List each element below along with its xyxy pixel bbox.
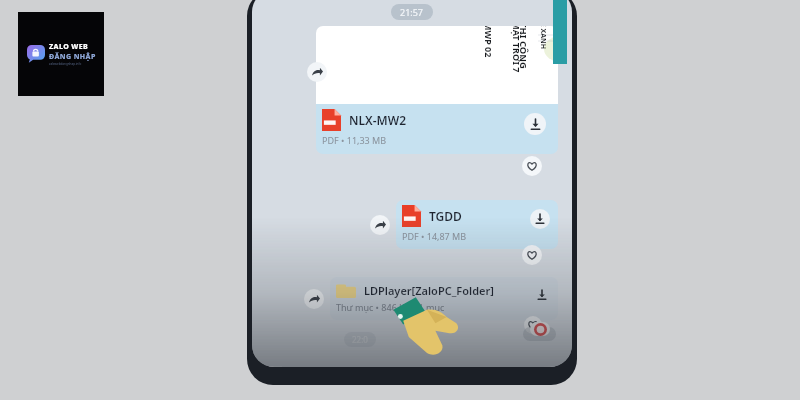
staticText: LDPlayer[ZaloPC_Folder] [364, 283, 494, 298]
button[interactable]: Zalo Web logo [18, 12, 104, 96]
button[interactable]: Like [522, 156, 542, 176]
staticText: ZALO WEB [49, 42, 89, 52]
staticText: IỀN MẶT TRỜI 7 [511, 26, 523, 73]
button[interactable]: Forward [307, 62, 327, 82]
button[interactable]: MWP 02 [316, 26, 558, 104]
button[interactable]: Like [524, 316, 542, 334]
staticText: zalowebdangnhap.info [49, 62, 82, 66]
staticText: MWP 02 [483, 26, 495, 58]
button[interactable]: NLX-MW2 [316, 104, 558, 154]
staticText: PDF • 14,87 MB [402, 230, 467, 242]
button[interactable]: Download [524, 113, 546, 135]
staticText: 22:0 [352, 334, 368, 345]
button[interactable]: Forward [304, 289, 324, 309]
staticText: NLX-MW2 [349, 112, 407, 128]
button[interactable]: Download [532, 285, 552, 305]
staticText: PDF • 11,33 MB [322, 134, 387, 146]
button[interactable]: Download [530, 209, 550, 229]
staticText [537, 333, 542, 335]
staticText: TGDD [429, 208, 462, 224]
button[interactable]: Reaction [523, 327, 556, 341]
staticText: ĐĂNG NHẬP [49, 52, 96, 62]
staticText: IỆ XANH [538, 26, 548, 50]
button[interactable]: LDPlayer[ZaloPC_Folder] [330, 277, 558, 320]
button[interactable]: Like [522, 245, 542, 265]
button[interactable]: Forward [370, 215, 390, 235]
staticText: Thư mục • 846 KB • 1 mục [336, 301, 445, 313]
button[interactable]: TGDD [396, 200, 558, 249]
staticText: 21:57 [400, 6, 424, 18]
staticText: VỀ THI CÔNG [517, 26, 530, 69]
